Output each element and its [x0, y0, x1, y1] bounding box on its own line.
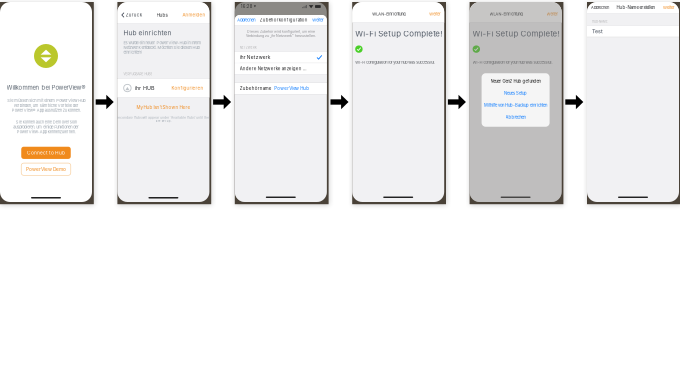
- staticText: Zubehörkonfiguration: [260, 17, 308, 23]
- staticText: VERFÜGBARE HUBS: [123, 72, 152, 76]
- staticText: Abbrechen: [506, 115, 526, 120]
- staticText: Weiter: [663, 5, 675, 10]
- staticText: Neuer Gen2 Hub gefunden: [491, 79, 541, 84]
- staticText: Zurück: [126, 12, 142, 18]
- button[interactable]: Neues Setup: [484, 90, 548, 97]
- staticText: PowerView Hub: [274, 86, 309, 91]
- staticText: Wi-Fi Setup Complete!: [473, 29, 560, 38]
- staticText: Abbrechen: [237, 18, 255, 22]
- staticText: My Hub Isn't Shown Here: [136, 105, 190, 110]
- staticText: Connect to Hub: [27, 150, 65, 156]
- staticText: Andere Netzwerke anzeigen …: [240, 66, 307, 71]
- staticText: Dieses Zubehör wird konfiguriert, um ein…: [246, 29, 316, 38]
- button[interactable]: Abbrechen: [587, 2, 613, 13]
- staticText: Test: [592, 28, 603, 35]
- staticText: Hubs: [157, 12, 168, 18]
- staticText: Zubehörname: [240, 86, 272, 91]
- staticText: Sie können auch eine Demoversion ausprob…: [13, 120, 79, 134]
- button[interactable]: Connect to Hub: [21, 147, 71, 159]
- button[interactable]: Zurück: [117, 10, 146, 19]
- staticText: 16:28: [241, 4, 253, 9]
- staticText: Hub-Name erstellen: [616, 5, 655, 10]
- staticText: Wi-Fi Setup Complete!: [355, 29, 442, 38]
- staticText: Sie müssen sich mit einem PowerView Hub …: [7, 98, 85, 113]
- staticText: Willkommen bei PowerView®: [6, 84, 85, 91]
- button[interactable]: Zubehörname: [235, 83, 327, 94]
- staticText: Secondary Hubs will appear under "Availa…: [116, 116, 211, 123]
- staticText: Wi-Fi configuration for your hub was suc…: [355, 60, 435, 65]
- staticText: Anmelden: [182, 12, 205, 18]
- staticText: Mithilfe von Hub-Backup einrichten: [484, 103, 547, 108]
- button[interactable]: Andere Netzwerke anzeigen …: [235, 63, 327, 74]
- staticText: ihr HUB: [135, 85, 154, 91]
- button[interactable]: Anmelden: [178, 10, 209, 19]
- button[interactable]: Weiter: [659, 2, 679, 13]
- button[interactable]: Weiter: [310, 15, 327, 25]
- staticText: Abbrechen: [591, 5, 609, 10]
- staticText: ihr Netzwerk: [240, 54, 271, 60]
- staticText: Weiter: [429, 12, 440, 16]
- staticText: Konfigurieren: [171, 85, 203, 91]
- staticText: Weiter: [547, 12, 558, 16]
- button[interactable]: Weiter: [425, 9, 444, 18]
- staticText: WLAN-Einrichtung: [372, 12, 405, 16]
- staticText: HUB-NAME: [592, 20, 608, 23]
- staticText: WLAN-Einrichtung: [490, 12, 523, 16]
- button[interactable]: My Hub Isn't Shown Here: [136, 105, 190, 110]
- staticText: PowerView Demo: [26, 166, 66, 172]
- staticText: Hub einrichten: [123, 29, 171, 37]
- staticText: Weiter: [312, 18, 324, 22]
- button[interactable]: Mithilfe von Hub-Backup einrichten: [484, 102, 548, 109]
- staticText: Wi-Fi configuration for your hub was suc…: [473, 60, 553, 65]
- button[interactable]: Weiter: [543, 9, 562, 18]
- button[interactable]: ihr Netzwerk: [235, 52, 327, 63]
- button[interactable]: PowerView Demo: [21, 163, 71, 175]
- button[interactable]: Abbrechen: [235, 15, 258, 25]
- staticText: Neues Setup: [504, 91, 527, 96]
- button[interactable]: Abbrechen: [484, 114, 548, 121]
- staticText: Es wurde ein neuer PowerView-Hub in Ihre…: [123, 40, 201, 55]
- staticText: NETZWERK: [240, 46, 257, 50]
- button[interactable]: ihr HUB: [117, 79, 209, 97]
